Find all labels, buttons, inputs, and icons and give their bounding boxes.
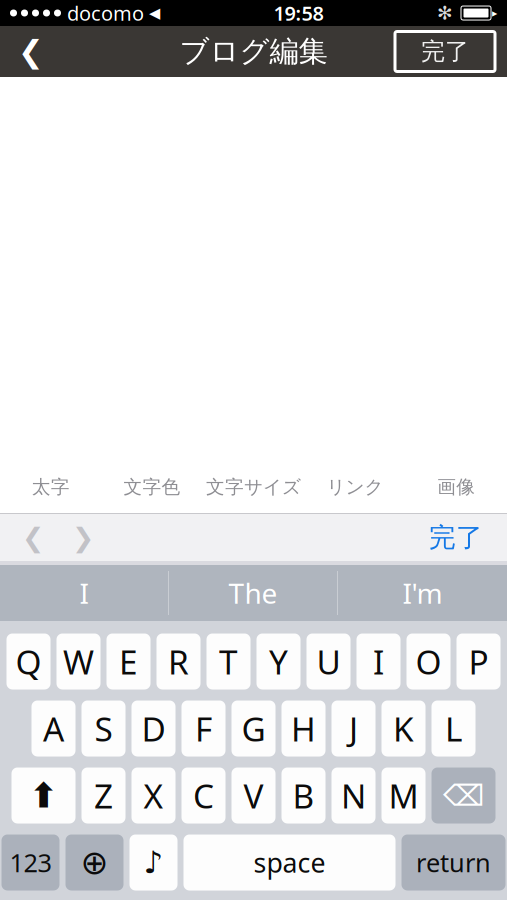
staticText: リンク <box>326 475 383 498</box>
button[interactable]: X <box>131 767 175 823</box>
button[interactable]: Previous <box>8 514 58 561</box>
staticText: 太字 <box>32 475 70 498</box>
staticText: space <box>253 845 325 880</box>
button[interactable]: S <box>81 700 125 756</box>
button[interactable]: Z <box>81 767 125 823</box>
staticText: ⬆ <box>29 776 58 815</box>
staticText: K <box>393 706 414 751</box>
staticText: ❮ <box>18 34 44 69</box>
staticText: S <box>94 706 112 751</box>
staticText: ブログ編集 <box>179 33 327 69</box>
staticText: 19:58 <box>273 0 323 26</box>
button[interactable]: Q <box>6 633 50 689</box>
staticText: R <box>168 639 189 684</box>
staticText: return <box>416 846 491 879</box>
button[interactable]: Delete <box>431 767 495 823</box>
button[interactable]: F <box>181 700 225 756</box>
staticText: I <box>373 639 384 684</box>
staticText: Z <box>94 773 113 818</box>
staticText: L <box>445 706 462 751</box>
button[interactable]: 太字 <box>0 461 101 513</box>
button[interactable]: space <box>183 834 395 890</box>
staticText: N <box>341 773 366 818</box>
staticText: 文字色 <box>124 475 181 498</box>
button[interactable]: V <box>231 767 275 823</box>
staticText: 完了 <box>421 37 469 66</box>
button[interactable]: Y <box>256 633 300 689</box>
button[interactable]: G <box>231 700 275 756</box>
button[interactable]: Back <box>0 26 62 77</box>
button[interactable]: A <box>31 700 75 756</box>
button[interactable]: B <box>281 767 325 823</box>
staticText: 完了 <box>429 521 483 554</box>
button[interactable]: 完了 <box>395 31 495 71</box>
button[interactable]: I <box>0 565 169 621</box>
staticText: E <box>119 639 138 684</box>
staticText: Y <box>269 639 288 684</box>
staticText: J <box>349 706 358 751</box>
staticText: H <box>291 706 316 751</box>
staticText: 123 <box>9 846 51 879</box>
button[interactable]: 完了 <box>413 514 499 561</box>
staticText: U <box>316 639 340 684</box>
button[interactable]: C <box>181 767 225 823</box>
button[interactable]: 文字サイズ <box>203 461 304 513</box>
staticText: ✻ <box>437 2 453 24</box>
staticText: ⌫ <box>443 779 484 812</box>
staticText: ◀ <box>149 5 160 21</box>
staticText: O <box>415 639 441 684</box>
button[interactable]: The <box>169 565 338 621</box>
button[interactable]: U <box>306 633 350 689</box>
staticText: ▸ <box>492 7 497 19</box>
button[interactable]: Next keyboard <box>65 834 123 890</box>
staticText: docomo <box>67 0 144 26</box>
staticText: 画像 <box>437 475 475 498</box>
staticText: W <box>63 639 94 684</box>
staticText: V <box>243 773 263 818</box>
button[interactable]: M <box>381 767 425 823</box>
staticText: D <box>141 706 165 751</box>
staticText: 文字サイズ <box>206 475 301 498</box>
button[interactable]: K <box>381 700 425 756</box>
button[interactable]: I'm <box>338 565 507 621</box>
staticText: ⊕ <box>80 844 108 881</box>
staticText: The <box>228 574 277 612</box>
staticText: G <box>241 706 265 751</box>
button[interactable]: N <box>331 767 375 823</box>
button[interactable]: L <box>431 700 475 756</box>
staticText: X <box>143 773 163 818</box>
button[interactable]: Next <box>58 514 108 561</box>
staticText: M <box>388 773 418 818</box>
staticText: T <box>219 639 238 684</box>
button[interactable]: Dictation <box>129 834 177 890</box>
staticText: ❯ <box>72 522 94 553</box>
staticText: B <box>292 773 314 818</box>
button[interactable]: D <box>131 700 175 756</box>
staticText: ♪ <box>143 845 163 880</box>
button[interactable]: I <box>356 633 400 689</box>
button[interactable]: return <box>401 834 505 890</box>
staticText: ❮ <box>22 522 44 553</box>
staticText: C <box>193 773 214 818</box>
button[interactable]: J <box>331 700 375 756</box>
staticText: Q <box>15 639 41 684</box>
button[interactable]: リンク <box>304 461 406 513</box>
button[interactable]: W <box>56 633 100 689</box>
button[interactable]: R <box>156 633 200 689</box>
button[interactable]: 画像 <box>406 461 507 513</box>
staticText: P <box>468 639 488 684</box>
staticText: F <box>195 706 212 751</box>
button[interactable]: P <box>456 633 500 689</box>
staticText: A <box>43 706 64 751</box>
button[interactable]: T <box>206 633 250 689</box>
staticText: I <box>79 574 88 612</box>
button[interactable]: 文字色 <box>101 461 203 513</box>
button[interactable]: 123 <box>1 834 59 890</box>
button[interactable]: Shift <box>11 767 75 823</box>
button[interactable]: E <box>106 633 150 689</box>
button[interactable]: H <box>281 700 325 756</box>
button[interactable]: O <box>406 633 450 689</box>
staticText: I'm <box>402 574 442 612</box>
